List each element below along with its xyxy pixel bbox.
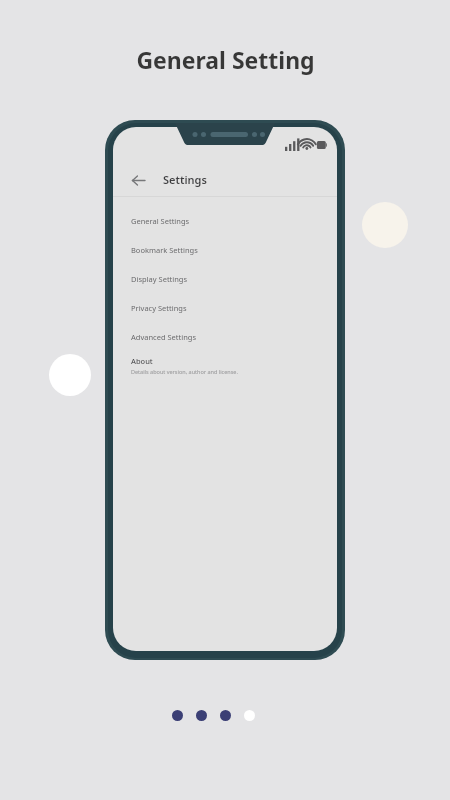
button[interactable]: Page 2 xyxy=(196,710,207,721)
staticText: General Settings xyxy=(131,216,190,226)
button[interactable]: Advanced Settings xyxy=(113,322,337,351)
staticText: About xyxy=(131,356,153,366)
staticText: Bookmark Settings xyxy=(131,245,198,255)
staticText: Advanced Settings xyxy=(131,332,196,342)
button[interactable]: About xyxy=(113,351,337,383)
staticText: General Setting xyxy=(136,44,315,75)
staticText: Details about version, author and licens… xyxy=(131,368,238,375)
button[interactable]: Page 4 xyxy=(244,710,255,721)
button[interactable]: Back xyxy=(127,169,149,191)
staticText: Settings xyxy=(163,172,207,187)
staticText: Display Settings xyxy=(131,274,188,284)
button[interactable]: Page 1 xyxy=(172,710,183,721)
button[interactable]: Page 3 xyxy=(220,710,231,721)
button[interactable]: Privacy Settings xyxy=(113,293,337,322)
button[interactable]: General Settings xyxy=(113,206,337,235)
button[interactable]: Bookmark Settings xyxy=(113,235,337,264)
button[interactable]: Display Settings xyxy=(113,264,337,293)
staticText: Privacy Settings xyxy=(131,303,187,313)
